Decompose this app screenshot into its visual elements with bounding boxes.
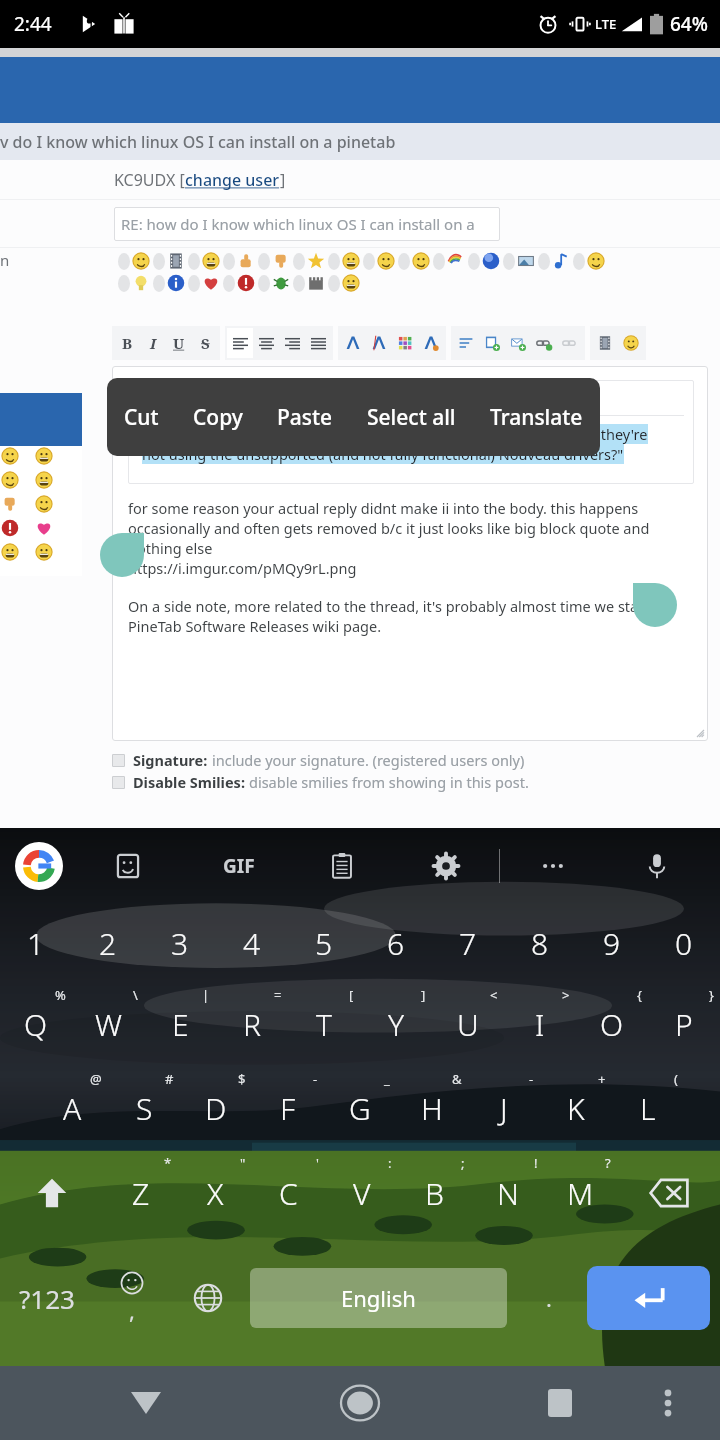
- button[interactable]: [272, 274, 290, 292]
- button[interactable]: G: [324, 1066, 396, 1150]
- button[interactable]: Align 0: [227, 328, 253, 358]
- button[interactable]: Settings: [423, 843, 469, 889]
- button[interactable]: [307, 274, 325, 292]
- button[interactable]: Stickers: [105, 843, 151, 889]
- button[interactable]: S: [108, 1066, 180, 1150]
- button[interactable]: U: [432, 982, 504, 1066]
- button[interactable]: [418, 328, 444, 358]
- button[interactable]: Align 3: [305, 328, 331, 358]
- button[interactable]: [167, 252, 185, 270]
- button[interactable]: X: [178, 1150, 252, 1236]
- button[interactable]: Select all: [350, 378, 473, 456]
- button[interactable]: Y: [360, 982, 432, 1066]
- button[interactable]: W: [72, 982, 144, 1066]
- button[interactable]: [1, 495, 19, 513]
- button[interactable]: [377, 252, 395, 270]
- button[interactable]: [35, 519, 53, 537]
- button[interactable]: Align 1: [253, 328, 279, 358]
- button[interactable]: Copy: [176, 378, 260, 456]
- button[interactable]: 5: [288, 904, 360, 982]
- button[interactable]: R: [216, 982, 288, 1066]
- button[interactable]: [392, 328, 418, 358]
- button[interactable]: Voice input: [634, 843, 680, 889]
- button[interactable]: 6: [360, 904, 432, 982]
- button[interactable]: 0: [648, 904, 720, 982]
- button[interactable]: [453, 328, 479, 358]
- button[interactable]: B: [398, 1150, 471, 1236]
- button[interactable]: Emoji and comma: [94, 1236, 170, 1360]
- button[interactable]: [517, 252, 535, 270]
- button[interactable]: 1: [0, 904, 72, 982]
- button[interactable]: [307, 252, 325, 270]
- button[interactable]: 7: [432, 904, 504, 982]
- button[interactable]: P: [648, 982, 720, 1066]
- button[interactable]: [342, 274, 360, 292]
- button[interactable]: I: [140, 328, 166, 358]
- button[interactable]: [479, 328, 505, 358]
- button[interactable]: D: [180, 1066, 252, 1150]
- button[interactable]: 3: [144, 904, 216, 982]
- button[interactable]: H: [396, 1066, 468, 1150]
- button[interactable]: A: [36, 1066, 108, 1150]
- button[interactable]: S: [192, 328, 218, 358]
- button[interactable]: Cut: [107, 378, 176, 456]
- button[interactable]: Clipboard: [319, 843, 365, 889]
- button[interactable]: B: [114, 328, 140, 358]
- button[interactable]: Enter: [587, 1266, 710, 1330]
- button[interactable]: [202, 274, 220, 292]
- button[interactable]: [552, 252, 570, 270]
- button[interactable]: [1, 471, 19, 489]
- button[interactable]: 8: [504, 904, 576, 982]
- button[interactable]: [237, 252, 255, 270]
- button[interactable]: RE: how do I know which linux OS I can i…: [114, 207, 500, 241]
- button[interactable]: English: [250, 1268, 507, 1328]
- button[interactable]: F: [252, 1066, 324, 1150]
- button[interactable]: Google: [15, 842, 63, 890]
- button[interactable]: change user: [185, 169, 280, 191]
- button[interactable]: More options: [644, 1379, 692, 1427]
- button[interactable]: [1, 543, 19, 561]
- button[interactable]: [1, 447, 19, 465]
- button[interactable]: Paste: [260, 378, 350, 456]
- button[interactable]: KC9UDX: [112, 366, 708, 741]
- button[interactable]: [618, 328, 644, 358]
- button[interactable]: Period: [511, 1236, 587, 1360]
- button[interactable]: [167, 274, 185, 292]
- button[interactable]: L: [612, 1066, 684, 1150]
- button[interactable]: Hide keyboard: [118, 1375, 174, 1431]
- button[interactable]: [366, 328, 392, 358]
- button[interactable]: Home: [331, 1374, 389, 1432]
- button[interactable]: 2: [72, 904, 144, 982]
- button[interactable]: K: [540, 1066, 612, 1150]
- button[interactable]: U: [166, 328, 192, 358]
- button[interactable]: GIF: [211, 843, 267, 889]
- button[interactable]: I: [504, 982, 576, 1066]
- button[interactable]: Recent apps: [532, 1375, 588, 1431]
- button[interactable]: [1, 519, 19, 537]
- button[interactable]: Z: [104, 1150, 178, 1236]
- button[interactable]: Q: [0, 982, 72, 1066]
- button[interactable]: [587, 252, 605, 270]
- button[interactable]: C: [252, 1150, 325, 1236]
- button[interactable]: [531, 328, 557, 358]
- button[interactable]: [35, 471, 53, 489]
- button[interactable]: More: [530, 843, 576, 889]
- button[interactable]: E: [144, 982, 216, 1066]
- button[interactable]: Shift: [0, 1150, 104, 1236]
- button[interactable]: M: [544, 1150, 617, 1236]
- button[interactable]: Disable Smilies:: [112, 771, 529, 793]
- button[interactable]: ?123: [0, 1236, 94, 1360]
- button[interactable]: [342, 252, 360, 270]
- button[interactable]: [35, 495, 53, 513]
- button[interactable]: [505, 328, 531, 358]
- button[interactable]: J: [468, 1066, 540, 1150]
- button[interactable]: [202, 252, 220, 270]
- button[interactable]: Backspace: [617, 1150, 720, 1236]
- button[interactable]: [592, 328, 618, 358]
- button[interactable]: Signature:: [112, 749, 525, 771]
- button[interactable]: 9: [576, 904, 648, 982]
- button[interactable]: V: [325, 1150, 398, 1236]
- button[interactable]: [132, 274, 150, 292]
- button[interactable]: [447, 252, 465, 270]
- button[interactable]: [35, 447, 53, 465]
